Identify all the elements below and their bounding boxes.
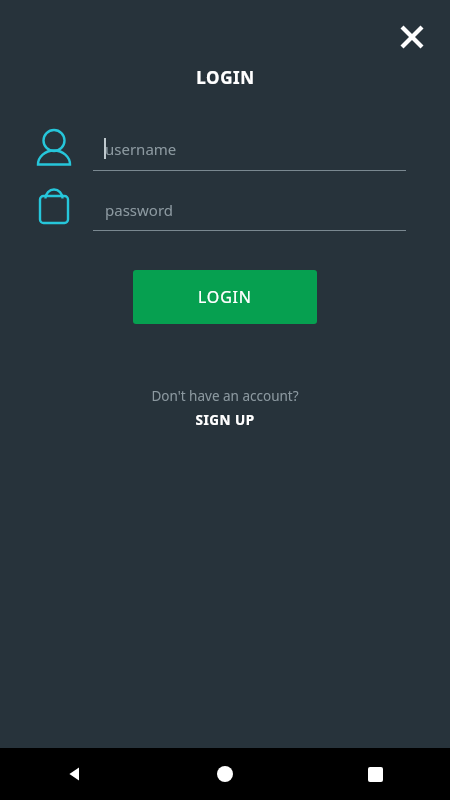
staticText: SIGN UP <box>195 411 255 429</box>
button[interactable]: Recent apps <box>300 748 450 800</box>
button[interactable]: Home <box>150 748 300 800</box>
button[interactable]: password <box>93 189 406 231</box>
button[interactable]: Close <box>392 17 432 57</box>
button[interactable]: SIGN UP <box>187 410 263 430</box>
staticText: Don't have an account? <box>151 387 299 405</box>
staticText: LOGIN <box>196 66 255 89</box>
staticText: password <box>105 200 173 220</box>
button[interactable]: LOGIN <box>133 270 317 324</box>
staticText: username <box>105 139 177 159</box>
button[interactable]: Back <box>0 748 150 800</box>
staticText: LOGIN <box>198 286 252 308</box>
button[interactable]: username <box>93 128 406 171</box>
